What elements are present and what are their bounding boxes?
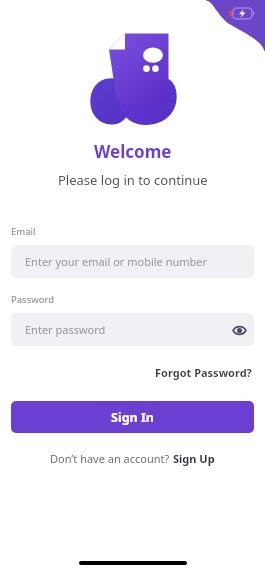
other: Battery charging (233, 8, 255, 19)
staticText: Sign Up (173, 451, 215, 466)
button[interactable]: Show password (224, 315, 254, 345)
staticText: Forgot Password? (155, 365, 252, 380)
button[interactable]: Forgot Password? (153, 363, 254, 382)
staticText: Email (11, 225, 36, 238)
staticText: Enter your email or mobile number (25, 254, 208, 269)
staticText: Welcome (94, 140, 172, 163)
staticText: Sign In (111, 409, 154, 426)
staticText: Please log in to continue (58, 171, 208, 189)
button[interactable]: Sign In (11, 401, 254, 433)
button[interactable]: Sign Up (173, 451, 215, 466)
staticText: Enter password (25, 322, 106, 337)
button[interactable]: Enter your email or mobile number (11, 245, 254, 278)
staticText: Don’t have an account? (50, 451, 173, 466)
staticText: Password (11, 293, 54, 306)
button[interactable]: Enter password (11, 313, 254, 346)
